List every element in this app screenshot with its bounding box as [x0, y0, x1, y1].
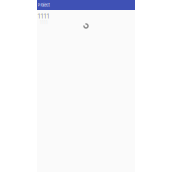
button[interactable]: Project — [37, 0, 135, 10]
staticText: 1111 — [39, 19, 47, 25]
staticText: Project — [37, 3, 49, 7]
staticText: 1111 — [37, 12, 49, 20]
